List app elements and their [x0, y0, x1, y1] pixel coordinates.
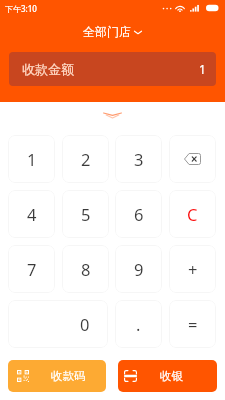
staticText: 2 [81, 148, 91, 170]
button[interactable]: 5 [62, 190, 109, 238]
staticText: 3 [134, 148, 144, 170]
button[interactable]: C [169, 190, 216, 238]
staticText: 5 [81, 203, 91, 225]
button[interactable]: 2 [62, 135, 109, 183]
button[interactable]: Backspace [169, 135, 216, 183]
button[interactable]: 8 [62, 245, 109, 293]
button[interactable]: 7 [8, 245, 55, 293]
button[interactable]: 全部门店 [83, 24, 142, 39]
staticText: 1 [27, 148, 37, 170]
button[interactable]: 9 [115, 245, 162, 293]
staticText: 收银 [160, 369, 183, 383]
button[interactable]: 收银 [118, 360, 217, 392]
staticText: . [136, 313, 141, 335]
button[interactable]: = [169, 300, 216, 348]
staticText: C [187, 203, 198, 225]
staticText: 7 [27, 258, 37, 280]
button[interactable]: . [115, 300, 162, 348]
staticText: 1 [199, 61, 206, 77]
staticText: 0 [80, 313, 90, 335]
staticText: 下午3:10 [5, 3, 37, 14]
button[interactable]: 0 [8, 300, 108, 348]
staticText: 9 [134, 258, 144, 280]
button[interactable]: + [169, 245, 216, 293]
button[interactable]: 收款码 [8, 360, 106, 392]
staticText: 6 [134, 203, 144, 225]
button[interactable]: 收款金额 [9, 52, 216, 86]
staticText: 全部门店 [83, 24, 131, 39]
button[interactable]: 6 [115, 190, 162, 238]
staticText: + [188, 258, 198, 280]
staticText: 收款码 [51, 369, 86, 383]
staticText: 8 [81, 258, 91, 280]
button[interactable]: 4 [8, 190, 55, 238]
button[interactable]: 3 [115, 135, 162, 183]
staticText: 4 [27, 203, 37, 225]
staticText: 收款金额 [22, 61, 74, 77]
staticText: = [188, 313, 198, 335]
button[interactable]: 1 [8, 135, 55, 183]
